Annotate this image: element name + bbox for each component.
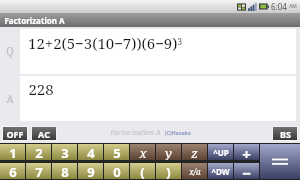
staticText: Factorization A [110, 128, 161, 138]
staticText: (C)Hanako [165, 130, 191, 137]
button[interactable]: 9 [78, 163, 103, 179]
staticText: 1 [9, 144, 17, 160]
staticText: AM [289, 3, 297, 10]
staticText: 2 [35, 144, 43, 160]
button[interactable]: Equals [260, 144, 300, 179]
button[interactable]: z [182, 144, 207, 160]
staticText: ^UP [213, 147, 229, 158]
button[interactable]: x [130, 144, 155, 160]
staticText: y [165, 144, 172, 160]
button[interactable]: 4 [78, 144, 103, 160]
staticText: 8 [61, 163, 69, 179]
staticText: 12+2(5−3(10−7))(6−9)3 [28, 33, 182, 53]
button[interactable]: 8 [52, 163, 77, 179]
staticText: x/a [189, 166, 201, 177]
staticText: 6 [9, 163, 17, 179]
button[interactable]: 1 [0, 144, 25, 160]
button[interactable]: ^UP [208, 144, 233, 160]
staticText: 9 [87, 163, 95, 179]
staticText: z [191, 144, 198, 160]
button[interactable]: AC [32, 127, 56, 140]
button[interactable]: 3 [52, 144, 77, 160]
staticText: 6:04 [271, 1, 287, 12]
staticText: BS [280, 128, 291, 140]
staticText: 5 [113, 144, 121, 160]
staticText: 228 [28, 79, 54, 99]
button[interactable]: 12+2(5−3(10−7))(6−9)3 [20, 29, 296, 74]
button[interactable]: ^DW [208, 163, 233, 179]
staticText: 0 [113, 163, 121, 179]
button[interactable]: 5 [104, 144, 129, 160]
button[interactable]: 0 [104, 163, 129, 179]
staticText: ^DW [211, 166, 230, 177]
button[interactable]: ( [130, 163, 155, 179]
button[interactable]: OFF [3, 127, 27, 140]
staticText: 3 [61, 144, 69, 160]
button[interactable]: 228 [20, 76, 296, 121]
button[interactable]: BS [273, 127, 297, 140]
button[interactable]: 6 [0, 163, 25, 179]
staticText: Q [6, 44, 14, 58]
staticText: A [6, 92, 14, 106]
button[interactable]: ) [156, 163, 181, 179]
button[interactable]: 7 [26, 163, 51, 179]
button[interactable]: + [234, 144, 259, 160]
staticText: Factorization A [4, 15, 65, 26]
staticText: + [242, 144, 251, 160]
staticText: x [139, 144, 147, 160]
button[interactable]: y [156, 144, 181, 160]
staticText: AC [38, 128, 50, 140]
staticText: ) [166, 163, 171, 179]
staticText: OFF [6, 128, 24, 140]
staticText: 4 [87, 144, 95, 160]
button[interactable]: 2 [26, 144, 51, 160]
staticText: ( [140, 163, 145, 179]
staticText: 7 [35, 163, 43, 179]
button[interactable]: − [234, 163, 259, 179]
staticText: − [242, 163, 251, 179]
button[interactable]: x/a [182, 163, 207, 179]
